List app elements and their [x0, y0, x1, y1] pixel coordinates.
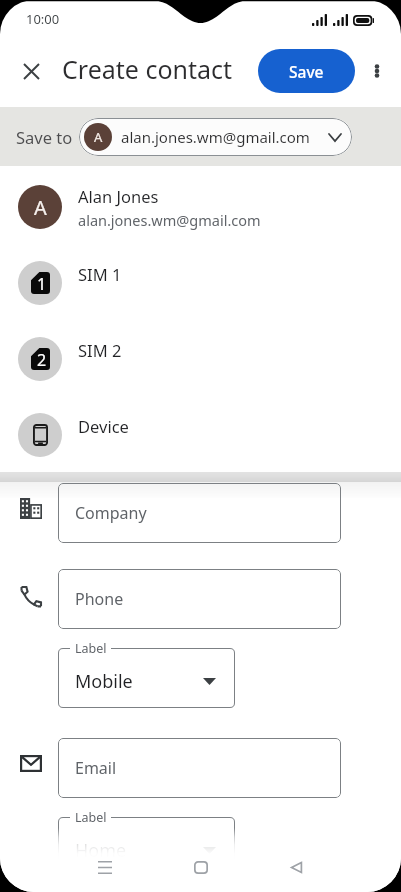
button[interactable]: A [0, 169, 401, 245]
button[interactable]: 2 [0, 321, 401, 397]
staticText: alan.jones.wm@gmail.com [121, 127, 310, 147]
staticText: 10:00 [26, 10, 60, 28]
staticText: A [34, 194, 47, 221]
staticText: Mobile [75, 669, 133, 694]
button[interactable]: 1 [0, 245, 401, 321]
button[interactable]: More options [355, 49, 399, 93]
staticText: Save to [16, 126, 73, 148]
button[interactable]: Recent apps [82, 845, 127, 890]
staticText: SIM 1 [78, 263, 122, 285]
staticText: Home [75, 838, 127, 863]
button[interactable]: Home [178, 845, 223, 890]
button[interactable]: Label [58, 648, 235, 708]
staticText: Label [75, 809, 107, 826]
button[interactable]: Label [58, 817, 235, 877]
staticText: Create contact [62, 52, 233, 86]
button[interactable]: Save [258, 49, 355, 93]
button[interactable]: Company [58, 483, 341, 543]
staticText: Label [75, 640, 107, 657]
button[interactable]: Device [0, 397, 401, 473]
button[interactable]: Email [58, 738, 341, 798]
staticText: A [94, 128, 103, 146]
button[interactable]: A [79, 118, 352, 156]
staticText: Email [75, 757, 117, 779]
staticText: 2 [37, 349, 47, 371]
staticText: Company [75, 502, 147, 524]
staticText: 1 [37, 273, 47, 295]
staticText: SIM 2 [78, 339, 122, 361]
button[interactable]: Back [274, 845, 319, 890]
staticText: Alan Jones [78, 185, 159, 207]
button[interactable]: Phone [58, 569, 341, 629]
staticText: Device [78, 415, 129, 437]
staticText: alan.jones.wm@gmail.com [78, 210, 261, 230]
staticText: Phone [75, 588, 124, 610]
button[interactable]: Close [9, 49, 53, 93]
staticText: Save [289, 61, 324, 82]
